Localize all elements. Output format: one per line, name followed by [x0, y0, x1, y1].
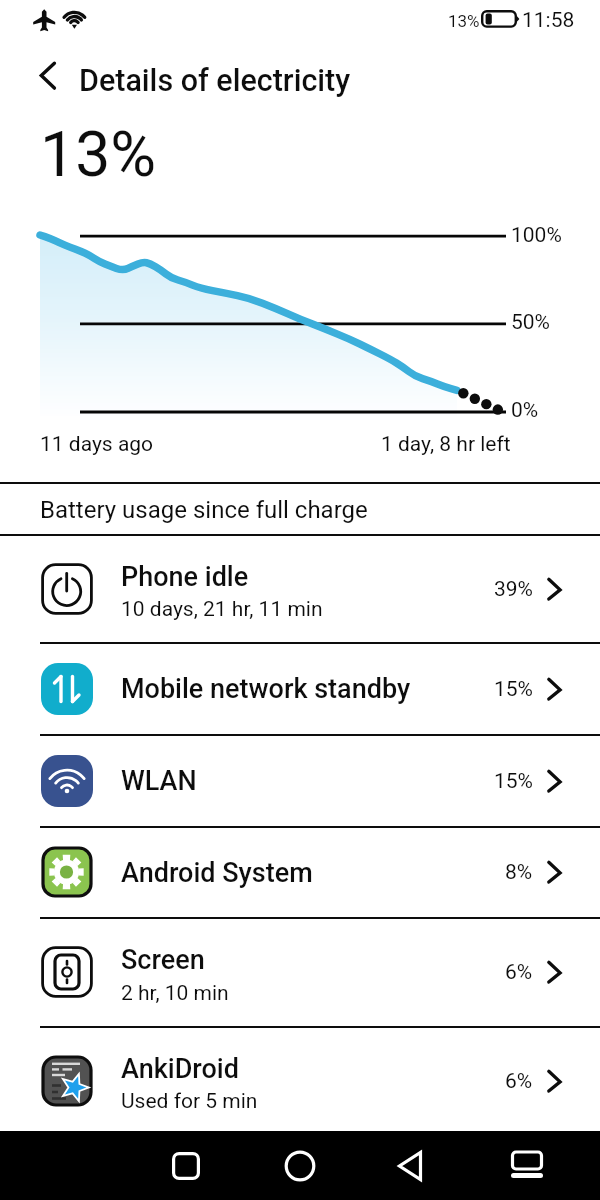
staticText: Mobile network standby — [121, 673, 411, 705]
button[interactable]: Split screen — [491, 1131, 563, 1200]
staticText: 2 hr, 10 min — [121, 981, 229, 1006]
button[interactable] — [0, 827, 600, 919]
button[interactable]: Home — [264, 1131, 336, 1200]
staticText: 100% — [511, 223, 562, 248]
button[interactable] — [0, 535, 600, 643]
button[interactable]: Back — [24, 51, 74, 101]
staticText: 39% — [494, 577, 533, 602]
button[interactable] — [0, 735, 600, 827]
staticText: Android System — [121, 857, 313, 889]
staticText: 50% — [511, 310, 550, 335]
staticText: 13% — [40, 118, 157, 191]
staticText: 8% — [505, 860, 533, 885]
staticText: WLAN — [121, 765, 197, 797]
staticText: 13% — [448, 11, 480, 31]
staticText: 10 days, 21 hr, 11 min — [121, 597, 323, 622]
staticText: Phone idle — [121, 561, 249, 593]
staticText: Details of electricity — [79, 63, 351, 99]
staticText: Screen — [121, 944, 205, 976]
button[interactable] — [0, 643, 600, 735]
staticText: 6% — [505, 1069, 533, 1094]
staticText: 15% — [494, 677, 533, 702]
staticText: 11 days ago — [40, 432, 154, 457]
button[interactable] — [0, 918, 600, 1027]
button[interactable] — [0, 1027, 600, 1135]
button[interactable]: Back — [376, 1131, 448, 1200]
staticText: 0% — [511, 398, 539, 423]
staticText: Used for 5 min — [121, 1089, 258, 1114]
staticText: AnkiDroid — [121, 1053, 239, 1085]
staticText: Battery usage since full charge — [40, 496, 368, 524]
staticText: 11:58 — [522, 8, 575, 33]
button[interactable]: Recent apps — [150, 1131, 222, 1200]
staticText: 1 day, 8 hr left — [381, 432, 511, 457]
staticText: 15% — [494, 769, 533, 794]
staticText: 6% — [505, 960, 533, 985]
button[interactable] — [0, 483, 600, 533]
